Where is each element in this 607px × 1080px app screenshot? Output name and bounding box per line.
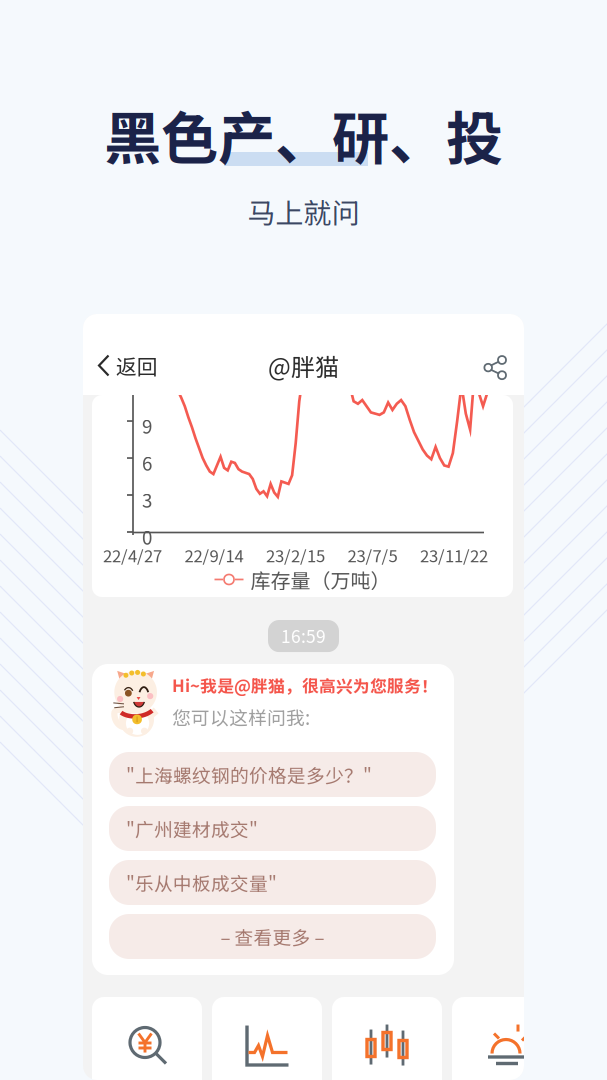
button[interactable]: K线 — [332, 997, 442, 1080]
staticText: 22/9/14 — [184, 543, 243, 567]
staticText: 返回 — [116, 350, 158, 380]
button[interactable]: 价格查询 — [92, 997, 202, 1080]
staticText: Hi~我是@胖猫，很高兴为您服务！ — [172, 673, 438, 697]
staticText: 22/4/27 — [103, 543, 162, 567]
staticText: 马上就问 — [247, 191, 359, 231]
staticText: 您可以这样问我: — [172, 703, 310, 730]
staticText: 3 — [142, 486, 152, 513]
staticText: 黑色产、研、投 — [104, 93, 503, 176]
button[interactable]: "上海螺纹钢的价格是多少？" — [109, 752, 436, 797]
button[interactable]: "广州建材成交" — [109, 806, 436, 851]
staticText: 16:59 — [281, 623, 326, 648]
staticText: – 查看更多 – — [220, 923, 324, 950]
button[interactable]: – 查看更多 – — [109, 914, 436, 959]
staticText: @胖猫 — [268, 348, 339, 383]
button[interactable]: 返回 — [93, 325, 170, 406]
staticText: 6 — [142, 449, 152, 476]
staticText: 0 — [142, 523, 152, 550]
staticText: "上海螺纹钢的价格是多少？" — [126, 761, 372, 788]
button[interactable]: Share — [484, 356, 507, 380]
staticText: 23/7/5 — [347, 543, 397, 567]
button[interactable]: "乐从中板成交量" — [109, 860, 436, 905]
staticText: 23/2/15 — [266, 543, 325, 567]
staticText: 库存量（万吨） — [250, 565, 390, 594]
staticText: 23/11/22 — [420, 543, 488, 567]
staticText: "乐从中板成交量" — [126, 869, 277, 896]
button[interactable]: 行情 — [452, 997, 562, 1080]
staticText: "广州建材成交" — [126, 815, 258, 842]
button[interactable]: 走势图 — [212, 997, 322, 1080]
staticText: 9 — [142, 412, 152, 439]
